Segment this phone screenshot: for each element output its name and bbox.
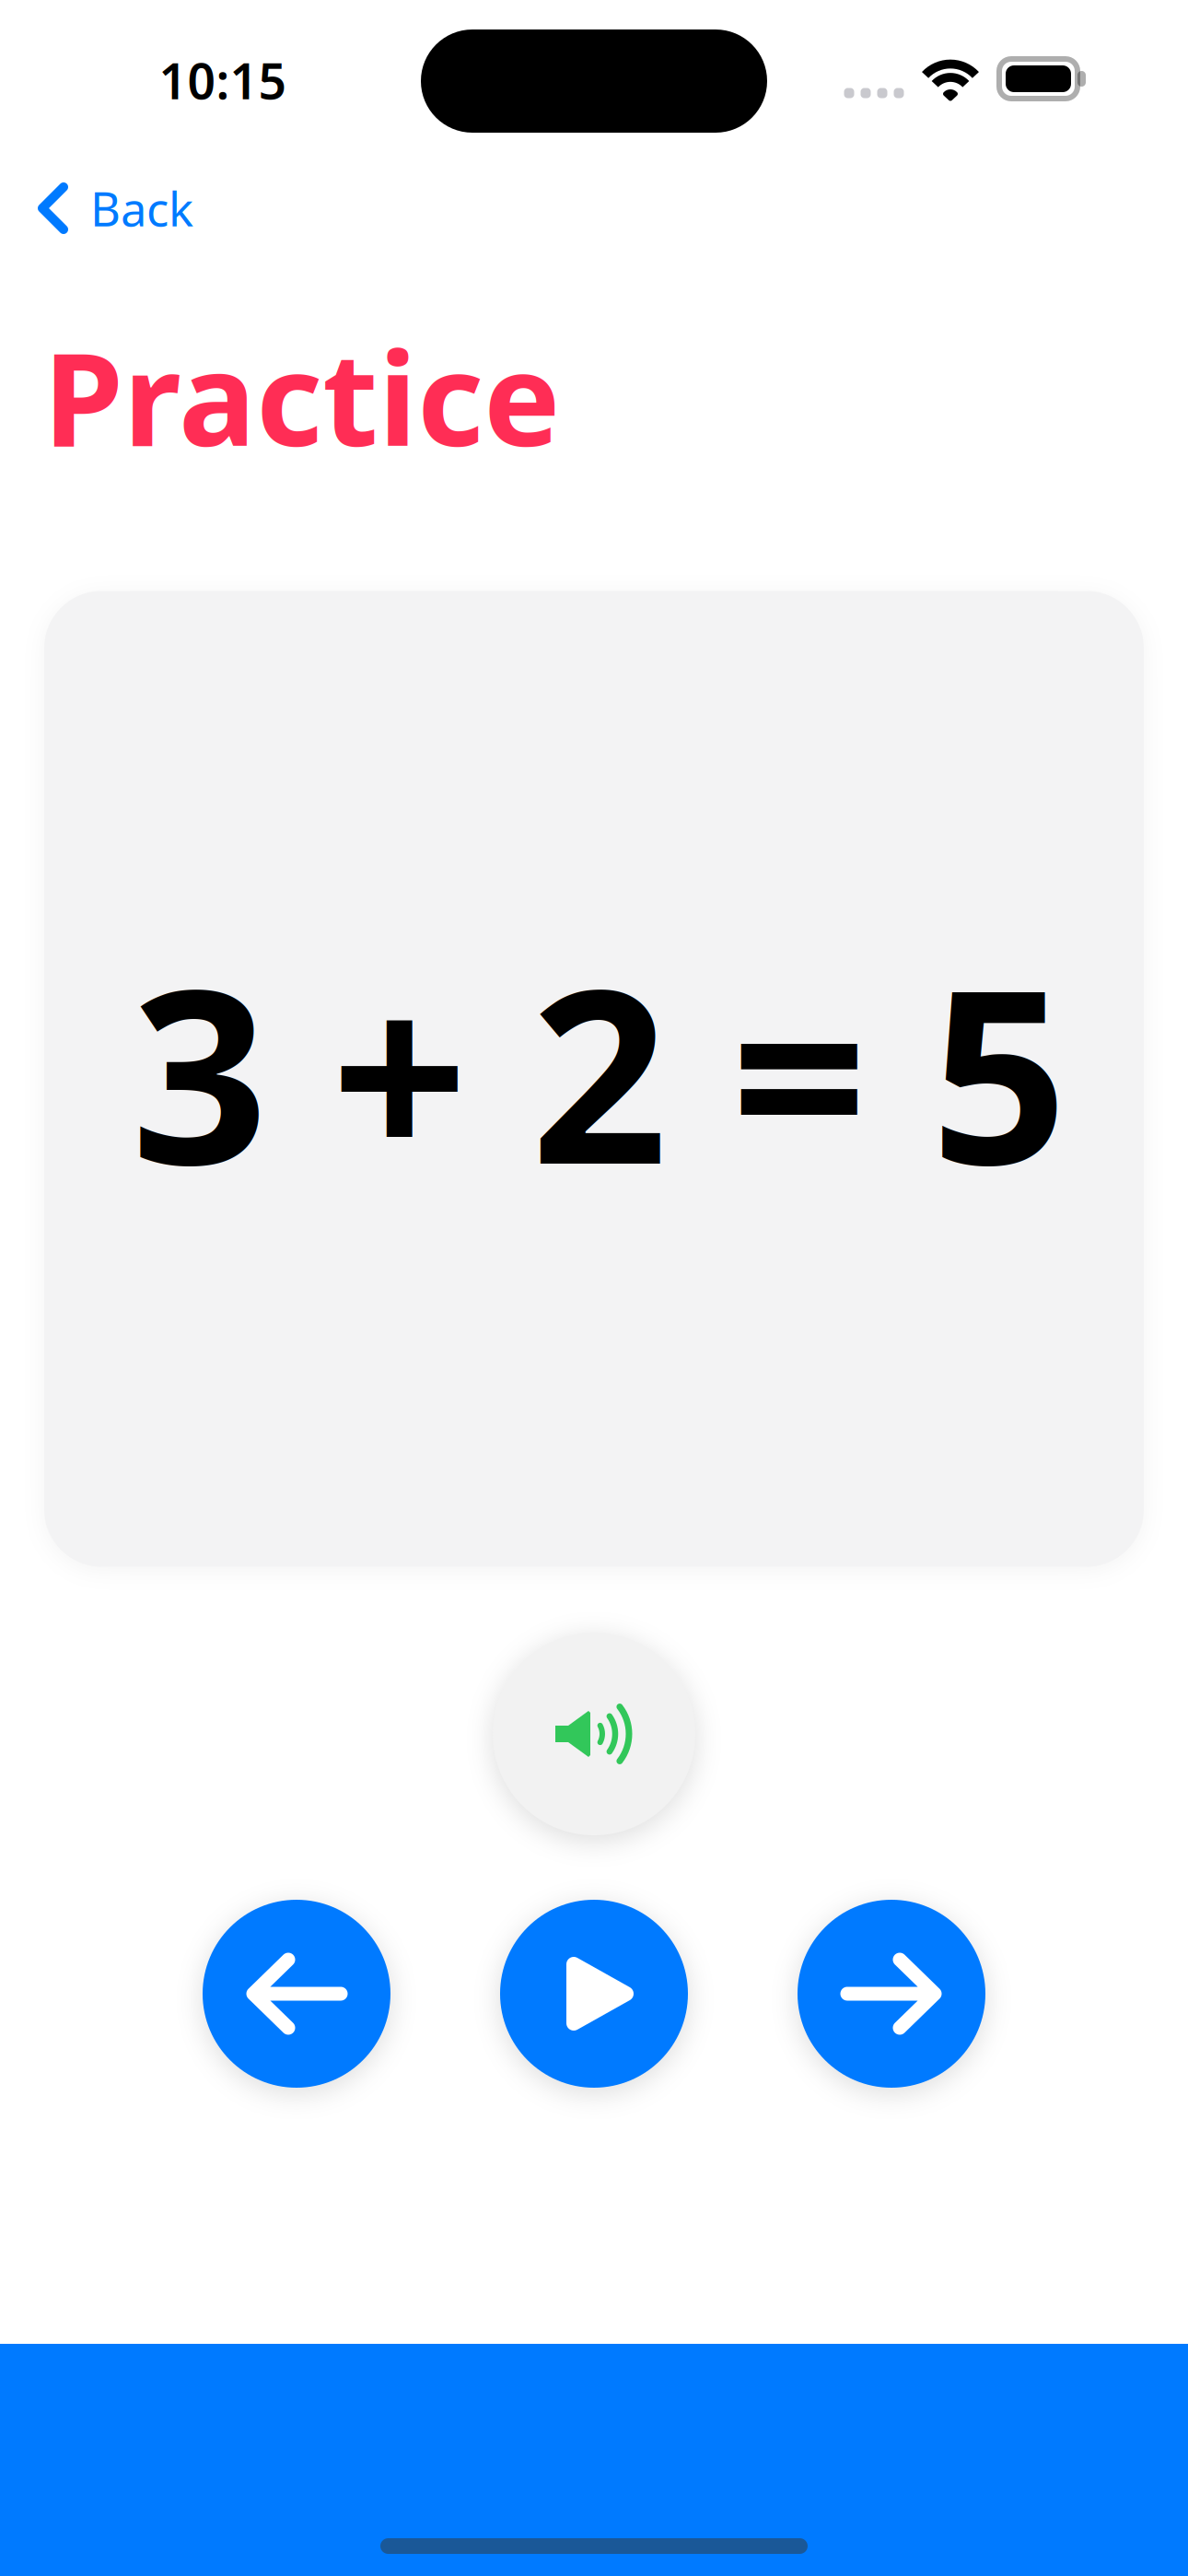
staticText: Practice	[43, 310, 561, 482]
staticText: 10:15	[159, 48, 287, 113]
button[interactable]: Play	[500, 1900, 688, 2088]
button[interactable]: Speak	[493, 1633, 695, 1835]
button[interactable]: Back	[0, 158, 332, 259]
staticText: 3 + 2 = 5	[131, 912, 1068, 1230]
button[interactable]: Previous	[203, 1900, 390, 2088]
button[interactable]: Next	[798, 1900, 985, 2088]
staticText: Back	[90, 177, 193, 239]
